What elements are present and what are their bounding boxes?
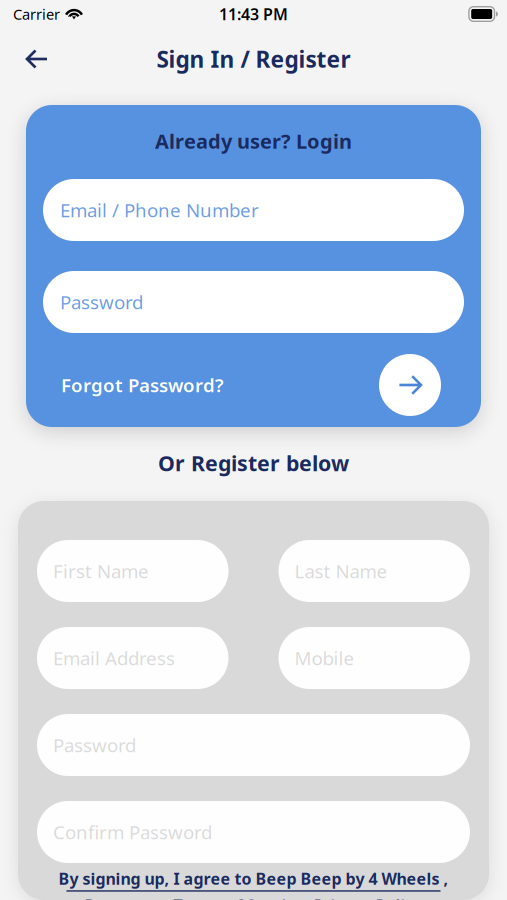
button[interactable]: Sign in	[379, 354, 441, 416]
staticText: Password	[53, 733, 136, 757]
staticText: Last Name	[294, 559, 387, 583]
button[interactable]: Email Address	[37, 627, 228, 689]
button[interactable]: Forgot Password?	[61, 363, 224, 407]
staticText: Email / Phone Number	[60, 198, 259, 222]
button[interactable]: Email / Phone Number	[43, 179, 464, 241]
button[interactable]: Back	[13, 37, 61, 81]
button[interactable]: Confirm Password	[37, 801, 470, 863]
button[interactable]: First Name	[37, 540, 228, 602]
staticText: 11:43 PM	[219, 3, 288, 25]
staticText: Sign In / Register	[156, 44, 350, 74]
staticText: By signing up, I agree to Beep Beep by 4…	[58, 868, 448, 889]
staticText: Email Address	[53, 646, 175, 670]
staticText: Or Register below	[158, 449, 349, 477]
staticText: First Name	[53, 559, 149, 583]
staticText: Password	[60, 290, 143, 314]
button[interactable]: Password	[37, 714, 470, 776]
staticText: Carrier	[13, 4, 60, 24]
button[interactable]: Password	[43, 271, 464, 333]
button[interactable]: Last Name	[278, 540, 470, 602]
staticText: Forgot Password?	[61, 373, 224, 397]
staticText: Already user? Login	[155, 128, 352, 154]
staticText: Confirm Password	[53, 820, 212, 844]
button[interactable]: Mobile	[278, 627, 470, 689]
button[interactable]: By signing up, I agree to Beep Beep by 4…	[58, 868, 448, 900]
staticText: Mobile	[294, 646, 354, 670]
staticText: Payments, Terms of Service, Privacy Poli…	[84, 895, 422, 900]
